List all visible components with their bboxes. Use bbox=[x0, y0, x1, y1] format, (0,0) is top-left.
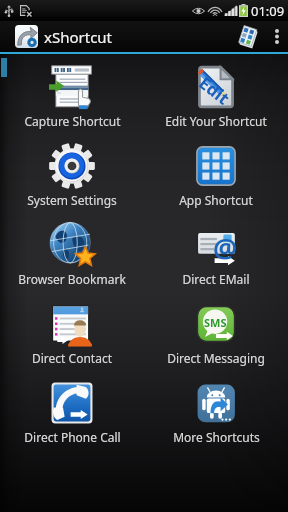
button[interactable]: SMS bbox=[144, 291, 288, 370]
staticText: xShortcut bbox=[44, 27, 113, 47]
button[interactable]: Edit bbox=[144, 54, 288, 133]
button[interactable]: Direct Contact bbox=[0, 291, 144, 370]
staticText: Capture Shortcut bbox=[24, 113, 121, 129]
staticText: Direct Phone Call bbox=[24, 429, 121, 445]
staticText: Edit bbox=[194, 71, 235, 110]
button[interactable]: System Settings bbox=[0, 133, 144, 212]
staticText: SMS bbox=[204, 315, 227, 330]
button[interactable]: App Shortcut bbox=[144, 133, 288, 212]
staticText: More Shortcuts bbox=[173, 429, 260, 445]
staticText: System Settings bbox=[27, 192, 117, 208]
staticText: Edit Your Shortcut bbox=[165, 113, 267, 129]
button[interactable]: Capture Shortcut bbox=[0, 54, 144, 133]
staticText: 01:09 bbox=[251, 2, 285, 20]
staticText: Direct Contact bbox=[32, 350, 112, 366]
button[interactable]: All shortcuts bbox=[230, 21, 266, 52]
button[interactable]: More Shortcuts bbox=[144, 370, 288, 449]
staticText: @ bbox=[213, 229, 238, 266]
staticText: Direct Messaging bbox=[167, 350, 265, 366]
button[interactable]: @ bbox=[144, 212, 288, 291]
button[interactable]: Direct Phone Call bbox=[0, 370, 144, 449]
staticText: Browser Bookmark bbox=[18, 271, 126, 287]
button[interactable]: More options bbox=[266, 21, 288, 52]
staticText: App Shortcut bbox=[179, 192, 253, 208]
button[interactable]: Browser Bookmark bbox=[0, 212, 144, 291]
staticText: Direct EMail bbox=[182, 271, 250, 287]
